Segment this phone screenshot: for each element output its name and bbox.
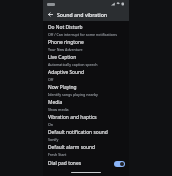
button[interactable]: Back [46, 10, 55, 19]
staticText: Do Not Disturb [48, 24, 83, 31]
staticText: Show media [48, 107, 69, 112]
button[interactable]: Dial pad tones [43, 158, 129, 169]
staticText: Sonify [48, 137, 59, 142]
staticText: On [48, 122, 54, 127]
button[interactable]: Now Playing [43, 83, 129, 98]
button[interactable]: Media [43, 98, 129, 113]
staticText: Fresh Start [48, 152, 67, 157]
button[interactable]: Dial pad tones toggle [114, 161, 125, 167]
button[interactable]: Do Not Disturb [43, 23, 129, 38]
button[interactable]: Live Caption [43, 53, 129, 68]
staticText: Dial pad tones [48, 160, 81, 167]
button[interactable]: Phone ringtone [43, 38, 129, 53]
button[interactable]: Default notification sound [43, 128, 129, 143]
staticText: Off [48, 77, 54, 82]
staticText: Adaptive Sound [48, 69, 85, 76]
staticText: Vibration and haptics [48, 114, 97, 121]
staticText: Off / Can interrupt for some notificatio… [48, 32, 117, 37]
staticText: Phone ringtone [48, 39, 84, 46]
staticText: Default alarm sound [48, 144, 96, 151]
button[interactable]: Default alarm sound [43, 143, 129, 158]
staticText: Media [48, 99, 63, 106]
staticText: Identify songs playing nearby [48, 92, 98, 97]
staticText: Default notification sound [48, 129, 108, 136]
staticText: Your New Adventure [48, 47, 83, 52]
staticText: Sound and vibration [57, 11, 108, 18]
button[interactable]: Adaptive Sound [43, 68, 129, 83]
staticText: Automatically caption speech [48, 62, 98, 67]
button[interactable]: Vibration and haptics [43, 113, 129, 128]
staticText: Now Playing [48, 84, 77, 91]
staticText: Live Caption [48, 54, 77, 61]
